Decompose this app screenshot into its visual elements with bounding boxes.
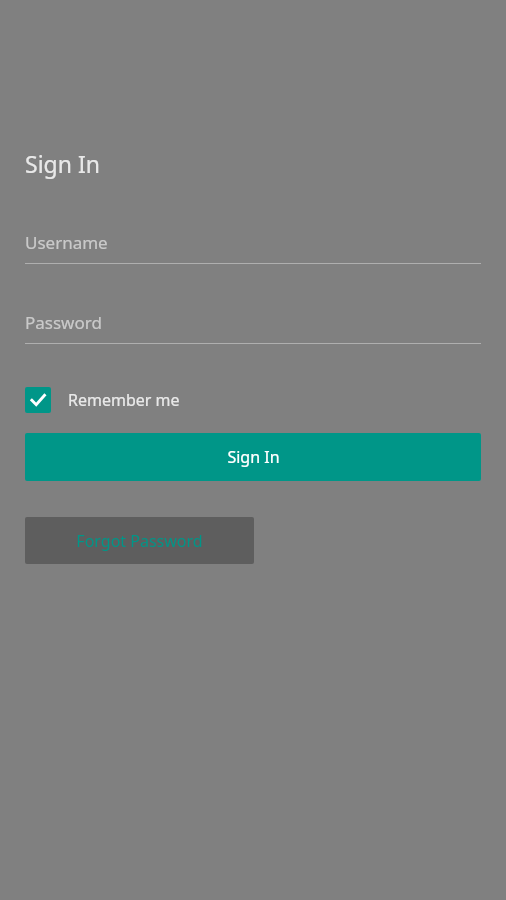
- button[interactable]: Sign In: [25, 433, 481, 481]
- button[interactable]: Password: [25, 311, 481, 344]
- button[interactable]: Forgot Password: [25, 517, 254, 564]
- staticText: Username: [25, 231, 108, 254]
- staticText: Password: [25, 311, 102, 334]
- button[interactable]: Remember me: [25, 385, 180, 415]
- staticText: Forgot Password: [76, 530, 203, 552]
- staticText: Sign In: [25, 148, 100, 179]
- staticText: Sign In: [227, 446, 280, 468]
- staticText: Remember me: [68, 389, 180, 411]
- button[interactable]: Username: [25, 231, 481, 264]
